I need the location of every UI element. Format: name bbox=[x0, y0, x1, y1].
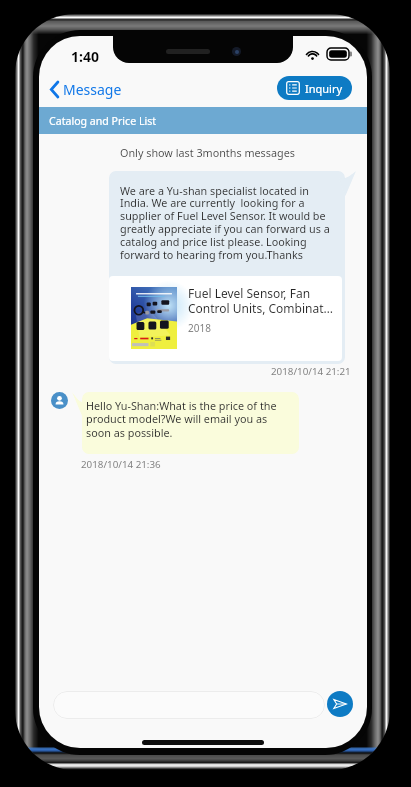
staticText: 2018 bbox=[188, 321, 211, 335]
button[interactable]: Contact avatar bbox=[51, 392, 68, 409]
button[interactable] bbox=[109, 171, 345, 364]
staticText: Catalog and Price List bbox=[49, 114, 157, 128]
staticText: 2018/10/14 21:36 bbox=[81, 458, 161, 471]
button[interactable] bbox=[53, 691, 325, 719]
staticText: Fuel Level Sensor, Fan Control Units, Co… bbox=[188, 285, 334, 316]
staticText: 1:40 bbox=[71, 47, 99, 66]
staticText: 2018/10/14 21:21 bbox=[271, 365, 351, 378]
button[interactable]: Fuel Level Sensor, Fan Control Units, Co… bbox=[109, 276, 342, 361]
button[interactable]: Message bbox=[45, 76, 128, 102]
staticText: Hello Yu-Shan:What is the price of the p… bbox=[86, 398, 291, 440]
staticText: Inquiry bbox=[305, 81, 343, 96]
staticText: We are a Yu-shan specialist located in I… bbox=[120, 183, 332, 263]
staticText: Only show last 3months messages bbox=[120, 145, 295, 160]
button[interactable]: Send bbox=[327, 691, 353, 717]
button[interactable]: Inquiry bbox=[277, 76, 352, 100]
button[interactable]: Hello Yu-Shan:What is the price of the p… bbox=[82, 392, 299, 454]
button[interactable]: Catalog and Price List bbox=[39, 107, 367, 134]
staticText: Message bbox=[63, 80, 122, 99]
